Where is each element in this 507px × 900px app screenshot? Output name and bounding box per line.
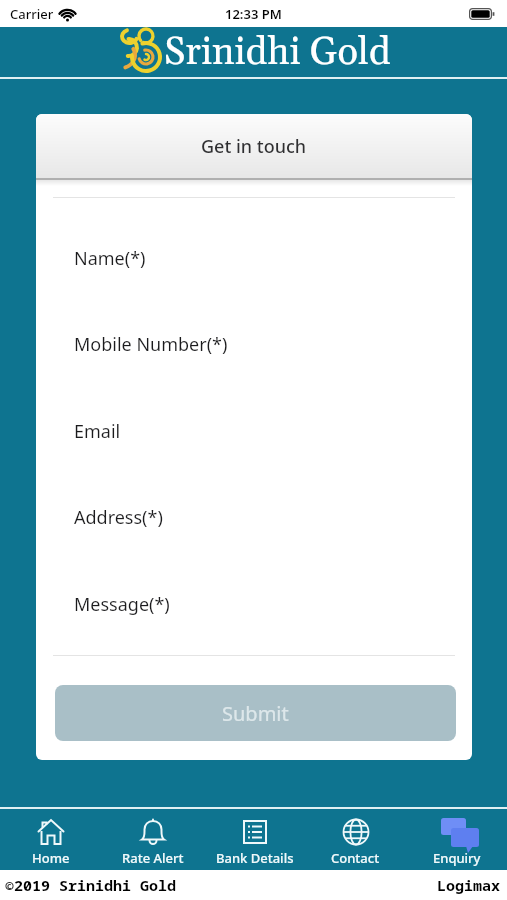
staticText: Carrier <box>10 5 54 23</box>
staticText: Home <box>32 849 70 867</box>
staticText: Name(*) <box>74 246 146 271</box>
staticText: Mobile Number(*) <box>74 332 228 357</box>
staticText: 12:33 PM <box>225 5 282 23</box>
button[interactable]: Enquiry <box>406 809 507 870</box>
staticText: Logimax <box>437 875 501 895</box>
staticText: Address(*) <box>74 505 163 530</box>
staticText: Get in touch <box>201 134 307 159</box>
staticText: Enquiry <box>433 849 481 867</box>
staticText: Rate Alert <box>122 849 184 867</box>
button[interactable]: Bank Details <box>204 809 305 870</box>
staticText: Submit <box>222 700 289 727</box>
button[interactable]: Home <box>0 809 102 870</box>
staticText: ©2019 Srinidhi Gold <box>5 875 177 895</box>
staticText: Contact <box>331 849 380 867</box>
staticText: Email <box>74 419 121 444</box>
staticText: Bank Details <box>216 849 294 867</box>
button[interactable]: Contact <box>305 809 406 870</box>
button[interactable]: Rate Alert <box>102 809 204 870</box>
staticText: Srinidhi Gold <box>164 29 391 77</box>
button[interactable]: Submit <box>55 685 456 741</box>
staticText: Message(*) <box>74 592 170 617</box>
